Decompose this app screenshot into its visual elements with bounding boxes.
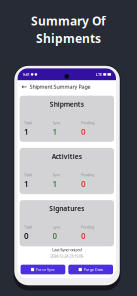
staticText: Pending [81,172,94,177]
button[interactable]: Purge Data [68,265,113,274]
staticText: 2024-12-24 23:15:06 [50,253,83,258]
staticText: 0 [24,231,29,241]
staticText: Force Sync [36,267,55,272]
staticText: 1 [53,178,58,189]
staticText: LTE [96,72,102,77]
staticText: Pending [81,120,94,125]
staticText: 0 [53,231,58,241]
staticText: 0 [81,126,86,137]
staticText: 1 [53,126,58,137]
staticText: Last Syncronized [52,247,81,252]
staticText: 9:41 [23,72,30,77]
staticText: Summary Of [31,13,106,29]
staticText: Total [24,120,32,125]
staticText: Purge Data [84,267,103,272]
staticText: Sync [53,172,61,177]
staticText: 1 [24,178,29,189]
staticText: Shipment Summary Page [30,83,91,90]
staticText: ← [22,83,28,90]
button[interactable]: Back [20,80,30,93]
staticText: Sync [53,224,61,230]
staticText: 0 [81,178,86,189]
staticText: Sync [53,120,61,125]
staticText: Shipments [50,100,84,109]
staticText: 0 [81,231,86,241]
staticText: Total [24,172,32,177]
staticText: 1 [24,126,29,137]
staticText: Signatures [49,204,84,213]
staticText: Total [24,224,32,230]
staticText: Activities [52,152,82,161]
staticText: Shipments [36,30,101,46]
staticText: Pending [81,224,94,230]
button[interactable]: Force Sync [21,265,65,274]
